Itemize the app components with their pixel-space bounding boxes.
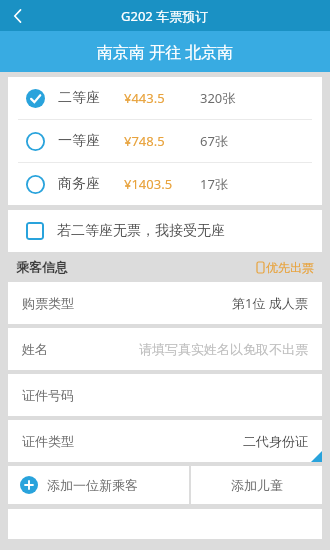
staticText: 第1位 成人票 bbox=[232, 294, 308, 312]
button[interactable]: 证件类型 bbox=[8, 420, 322, 462]
button[interactable]: 优先出票 bbox=[257, 260, 314, 275]
button[interactable]: 一等座 bbox=[8, 120, 322, 162]
staticText: ¥1403.5 bbox=[124, 175, 200, 193]
button[interactable]: Back bbox=[0, 0, 36, 31]
staticText: 320张 bbox=[200, 89, 236, 107]
staticText: 南京南 开往 北京南 bbox=[97, 41, 234, 63]
staticText: 17张 bbox=[200, 175, 228, 193]
staticText: ¥443.5 bbox=[124, 89, 200, 107]
staticText: 添加儿童 bbox=[231, 477, 283, 493]
staticText: 添加一位新乘客 bbox=[47, 477, 138, 493]
staticText: 67张 bbox=[200, 132, 228, 150]
staticText: 乘客信息 bbox=[16, 259, 68, 275]
staticText: 优先出票 bbox=[266, 260, 314, 275]
button[interactable]: 二等座 bbox=[8, 77, 322, 119]
staticText: 购票类型 bbox=[22, 295, 74, 311]
button[interactable]: 购票类型 bbox=[8, 282, 322, 324]
staticText: 二等座 bbox=[58, 89, 124, 107]
button[interactable]: 证件号码 bbox=[8, 374, 322, 416]
button[interactable]: 商务座 bbox=[8, 163, 322, 205]
button[interactable]: 添加儿童 bbox=[191, 466, 322, 504]
staticText: 证件号码 bbox=[22, 387, 74, 403]
staticText: 二代身份证 bbox=[243, 433, 308, 449]
staticText: 请填写真实姓名以免取不出票 bbox=[139, 341, 308, 357]
staticText: 商务座 bbox=[58, 175, 124, 193]
button[interactable]: 姓名 bbox=[8, 328, 322, 370]
staticText: 姓名 bbox=[22, 341, 48, 357]
staticText: G202 车票预订 bbox=[121, 7, 209, 25]
button[interactable]: 添加一位新乘客 bbox=[8, 466, 189, 504]
staticText: 证件类型 bbox=[22, 433, 74, 449]
button[interactable]: 若二等座无票，我接受无座 bbox=[8, 210, 322, 252]
staticText: 若二等座无票，我接受无座 bbox=[57, 222, 225, 240]
staticText: 一等座 bbox=[58, 132, 124, 150]
staticText: ¥748.5 bbox=[124, 132, 200, 150]
